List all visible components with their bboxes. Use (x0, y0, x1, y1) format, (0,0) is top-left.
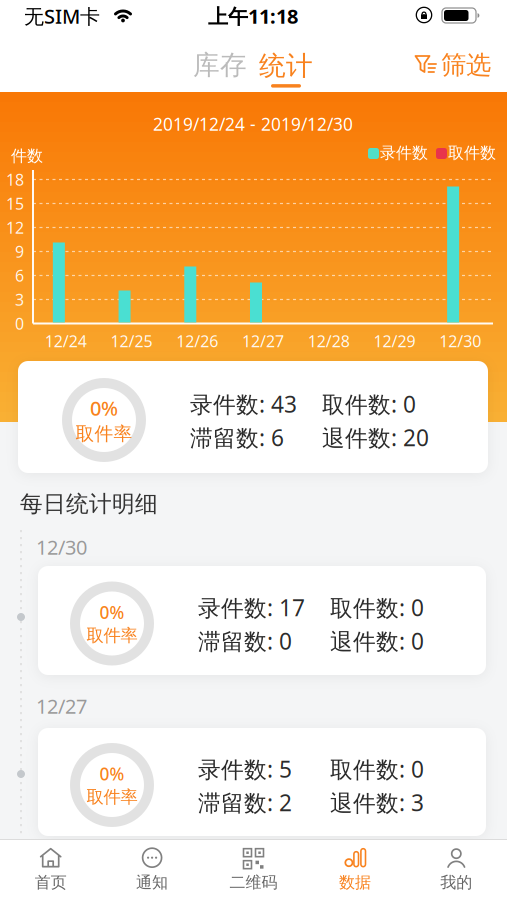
staticText: 0% (90, 395, 118, 421)
staticText: 15 (6, 193, 24, 214)
staticText: 录件数: 5 (198, 754, 292, 784)
staticText: 2019/12/24 - 2019/12/30 (153, 112, 353, 135)
staticText: 0% (99, 762, 124, 785)
staticText: 无SIM卡 (24, 3, 100, 29)
staticText: 12/30 (36, 534, 87, 560)
staticText: 12/27 (36, 693, 87, 719)
staticText: 12/27 (242, 330, 284, 352)
staticText: 数据 (339, 873, 371, 892)
staticText: 录件数: 17 (198, 592, 305, 622)
staticText: 12/30 (439, 330, 481, 352)
button[interactable]: 首页 (6, 840, 96, 898)
staticText: 取件数: 0 (330, 754, 424, 784)
staticText: 6 (15, 265, 24, 286)
staticText: 滞留数: 6 (190, 422, 284, 452)
staticText: 3 (15, 289, 24, 310)
staticText: 退件数: 20 (322, 422, 429, 452)
staticText: 取件数 (448, 143, 496, 163)
button[interactable]: 数据 (310, 840, 400, 898)
staticText: 上午11:18 (208, 3, 298, 29)
staticText: 9 (15, 241, 24, 262)
staticText: 取件数: 0 (322, 389, 416, 419)
staticText: 18 (6, 169, 24, 190)
staticText: 12/26 (176, 330, 218, 352)
button[interactable]: 通知 (107, 840, 197, 898)
staticText: 12/29 (373, 330, 415, 352)
staticText: 取件率 (86, 786, 137, 808)
staticText: 录件数 (380, 143, 428, 163)
staticText: 筛选 (441, 49, 491, 80)
staticText: 0 (15, 313, 24, 334)
staticText: 录件数: 43 (190, 389, 297, 419)
staticText: 12/25 (111, 330, 153, 352)
staticText: 件数 (11, 146, 43, 166)
staticText: 退件数: 0 (330, 626, 424, 656)
staticText: 滞留数: 0 (198, 626, 292, 656)
button[interactable]: 二维码 (208, 840, 298, 898)
staticText: 退件数: 3 (330, 787, 424, 817)
staticText: 统计 (259, 49, 313, 82)
button[interactable]: 统计 (259, 49, 313, 88)
staticText: 取件数: 0 (330, 592, 424, 622)
staticText: 每日统计明细 (20, 490, 158, 518)
staticText: 12/24 (45, 330, 87, 352)
staticText: 库存 (193, 49, 247, 81)
staticText: 取件率 (86, 625, 137, 646)
staticText: 取件率 (75, 422, 132, 445)
staticText: 12 (6, 217, 24, 238)
staticText: 滞留数: 2 (198, 787, 292, 817)
button[interactable]: 库存 (186, 43, 254, 87)
staticText: 二维码 (229, 873, 277, 892)
staticText: 12/28 (308, 330, 350, 352)
staticText: 我的 (440, 873, 472, 892)
staticText: 通知 (136, 873, 168, 892)
staticText: 0% (99, 601, 124, 624)
staticText: 首页 (35, 873, 67, 892)
button[interactable]: 我的 (411, 840, 501, 898)
button[interactable]: 筛选 (415, 49, 491, 80)
